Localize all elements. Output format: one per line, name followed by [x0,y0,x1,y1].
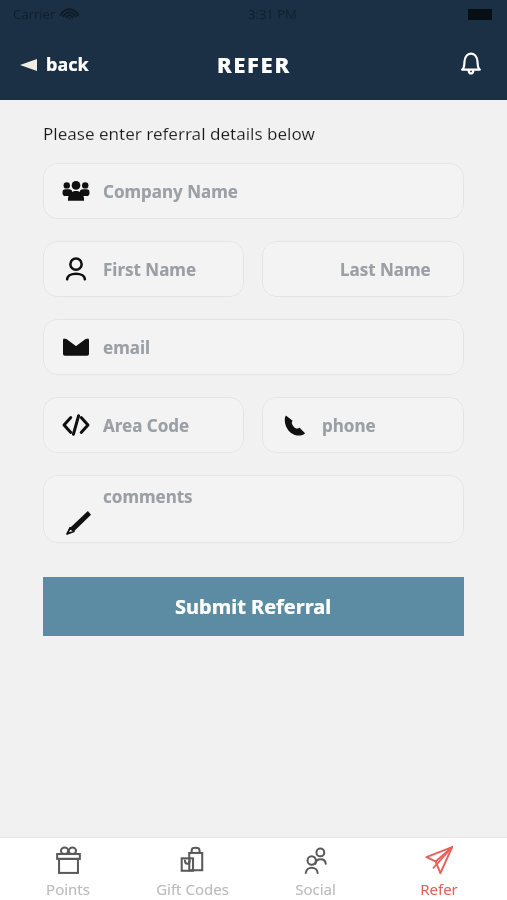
button[interactable]: phone [262,397,464,453]
button[interactable]: Gift Codes [137,838,247,899]
button[interactable]: Social [260,838,370,899]
button[interactable]: email [43,319,464,375]
staticText: First Name [103,258,197,281]
button[interactable]: Last Name [262,241,464,297]
staticText: Last Name [340,258,431,281]
button[interactable]: Points [13,838,123,899]
staticText: Area Code [103,414,190,437]
staticText: email [103,336,151,359]
staticText: back [46,52,89,77]
button[interactable]: Refer [384,838,494,899]
staticText: Carrier [13,5,56,23]
staticText: Refer [420,879,458,899]
staticText: REFER [217,49,291,79]
button[interactable]: First Name [43,241,244,297]
button[interactable]: Submit Referral [43,577,464,636]
staticText: Submit Referral [175,593,332,620]
staticText: Gift Codes [156,879,229,899]
button[interactable]: Notifications [451,44,491,84]
button[interactable]: Company Name [43,163,464,219]
staticText: comments [103,485,193,508]
staticText: 3:31 PM [248,5,297,23]
staticText: Please enter referral details below [43,122,315,145]
staticText: phone [322,414,376,437]
button[interactable]: back [14,44,95,85]
staticText: Social [295,879,336,899]
staticText: Points [46,879,90,899]
button[interactable]: Area Code [43,397,244,453]
button[interactable]: comments [43,475,464,543]
staticText: Company Name [103,180,238,203]
